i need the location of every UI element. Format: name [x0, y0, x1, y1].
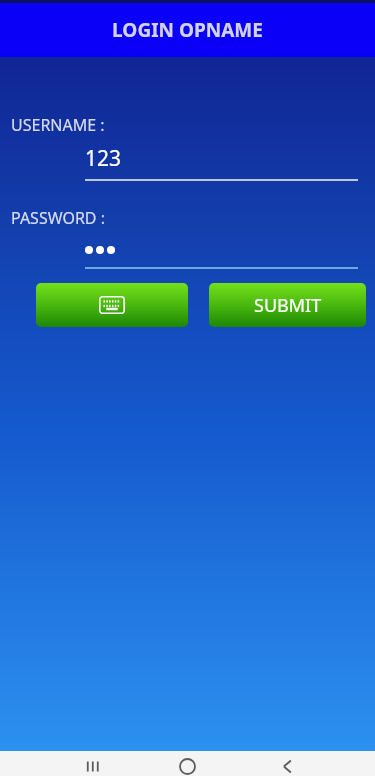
staticText: 123 [85, 144, 122, 173]
button[interactable]: SUBMIT [209, 283, 366, 327]
button[interactable]: 123 [85, 144, 358, 181]
staticText: SUBMIT [254, 293, 322, 318]
button[interactable]: Show keyboard [36, 283, 188, 327]
staticText: USERNAME : [11, 114, 105, 136]
staticText: LOGIN OPNAME [112, 17, 263, 43]
staticText: PASSWORD : [11, 207, 105, 229]
button[interactable] [85, 239, 358, 269]
